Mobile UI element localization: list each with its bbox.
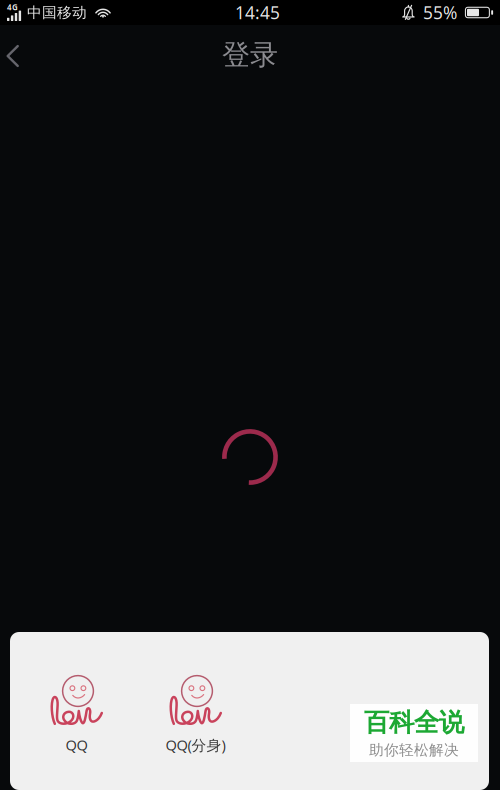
staticText: 百科全说 <box>364 707 464 738</box>
button[interactable]: Back <box>0 33 35 79</box>
staticText: 4G <box>7 2 18 12</box>
staticText: 中国移动 <box>27 3 87 21</box>
button[interactable]: QQ <box>17 674 136 790</box>
staticText: QQ(分身) <box>165 735 225 755</box>
staticText: 14:45 <box>235 1 280 24</box>
staticText: 助你轻松解决 <box>369 741 459 759</box>
staticText: 55% <box>423 1 457 24</box>
button[interactable]: QQ(分身) <box>136 674 255 790</box>
staticText: QQ <box>65 735 87 754</box>
staticText: 登录 <box>222 38 278 72</box>
